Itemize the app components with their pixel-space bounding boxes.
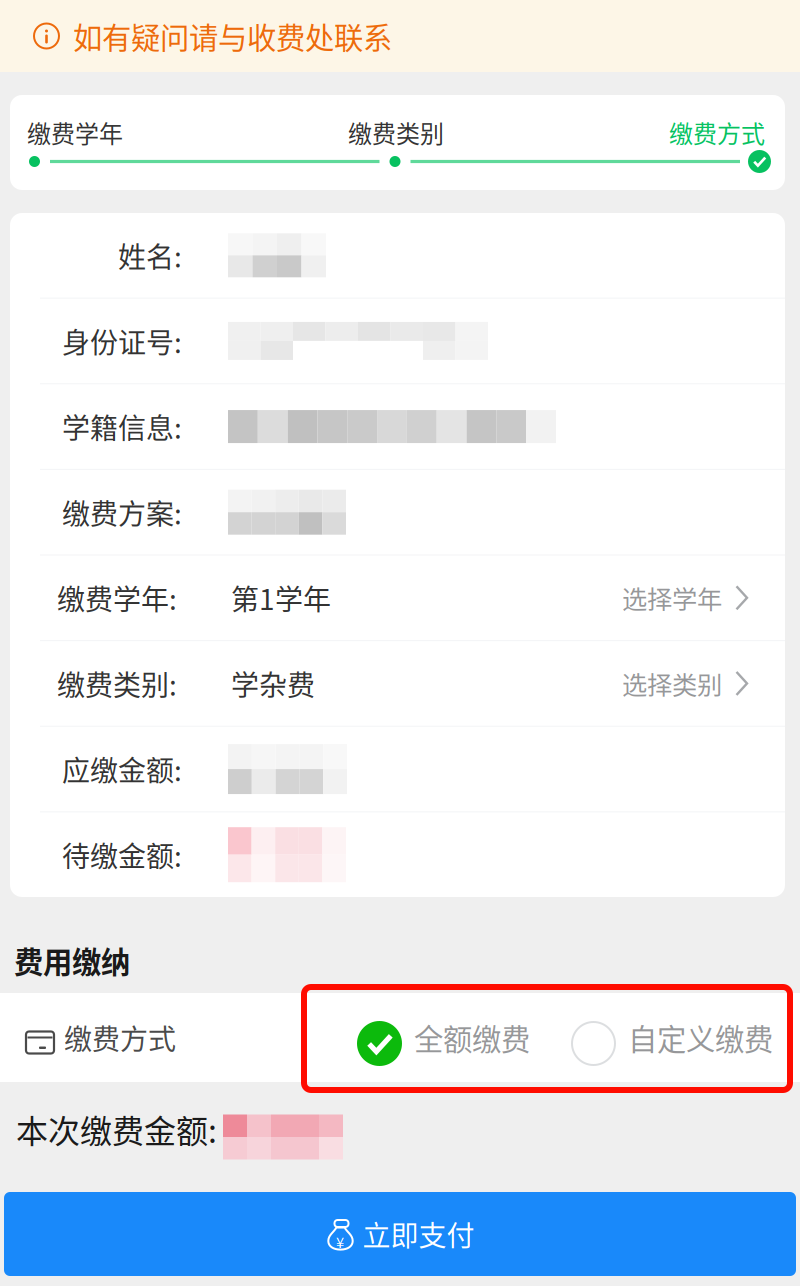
staticText: 选择学年 xyxy=(622,579,722,616)
button[interactable]: 选择类别 xyxy=(622,641,790,726)
staticText: 费用缴纳 xyxy=(14,939,130,981)
button[interactable]: 选择学年 xyxy=(622,555,790,640)
staticText: 缴费方案: xyxy=(62,492,182,532)
staticText: 全额缴费 xyxy=(414,1016,530,1059)
staticText: 缴费类别 xyxy=(348,115,444,150)
staticText: 选择类别 xyxy=(622,665,722,702)
staticText: ¥ xyxy=(336,1231,344,1252)
staticText: 学杂费 xyxy=(231,663,315,704)
staticText: 应缴金额: xyxy=(62,749,182,789)
staticText: 第1学年 xyxy=(231,577,331,618)
staticText: 自定义缴费 xyxy=(628,1016,773,1059)
staticText: 待缴金额: xyxy=(62,834,182,875)
button[interactable]: 全额缴费 xyxy=(357,993,530,1082)
staticText: 缴费学年: xyxy=(57,577,177,618)
button[interactable]: ¥ xyxy=(4,1192,796,1276)
staticText: 学籍信息: xyxy=(62,406,182,447)
staticText: 立即支付 xyxy=(362,1214,474,1254)
button[interactable]: 自定义缴费 xyxy=(572,993,773,1082)
staticText: 缴费类别: xyxy=(57,663,177,704)
staticText: 姓名: xyxy=(118,235,182,275)
staticText: 缴费方式 xyxy=(669,115,765,150)
staticText: 身份证号: xyxy=(62,321,182,361)
staticText: 缴费方式 xyxy=(64,1017,176,1058)
staticText: 如有疑问请与收费处联系 xyxy=(73,15,392,57)
staticText: 缴费学年 xyxy=(27,115,123,150)
staticText: 本次缴费金额: xyxy=(16,1106,217,1152)
